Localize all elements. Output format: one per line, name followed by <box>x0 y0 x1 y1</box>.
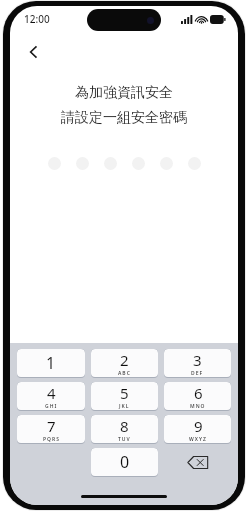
button[interactable]: 0 <box>91 448 158 477</box>
staticText: ABC <box>118 370 131 377</box>
button[interactable]: 5 <box>91 382 158 411</box>
button[interactable]: 1 <box>17 349 85 378</box>
staticText: 為加強資訊安全 <box>75 84 173 102</box>
staticText: MNO <box>190 403 206 410</box>
staticText: 9 <box>194 416 203 436</box>
staticText: WXYZ <box>189 436 207 443</box>
staticText: GHI <box>45 403 58 410</box>
button[interactable]: Back <box>18 36 50 68</box>
staticText: TUV <box>118 436 131 443</box>
staticText: 12:00 <box>24 12 50 26</box>
staticText: 7 <box>47 416 56 436</box>
button[interactable]: 9 <box>164 415 231 444</box>
staticText: 8 <box>120 416 129 436</box>
button[interactable]: Delete <box>164 448 231 477</box>
staticText: 2 <box>120 350 129 370</box>
button[interactable]: 3 <box>164 349 231 378</box>
staticText: 5 <box>120 383 129 403</box>
staticText: PQRS <box>43 436 60 443</box>
staticText: 6 <box>194 383 203 403</box>
staticText: DEF <box>191 370 204 377</box>
button[interactable]: 4 <box>17 382 85 411</box>
staticText: 請設定一組安全密碼 <box>61 109 187 127</box>
staticText: 0 <box>120 451 130 473</box>
button[interactable]: 6 <box>164 382 231 411</box>
staticText: 1 <box>46 352 56 374</box>
staticText: 4 <box>47 383 56 403</box>
button[interactable]: 2 <box>91 349 158 378</box>
staticText: 3 <box>193 350 202 370</box>
button[interactable]: 7 <box>17 415 85 444</box>
staticText: JKL <box>119 403 130 410</box>
button[interactable]: 8 <box>91 415 158 444</box>
